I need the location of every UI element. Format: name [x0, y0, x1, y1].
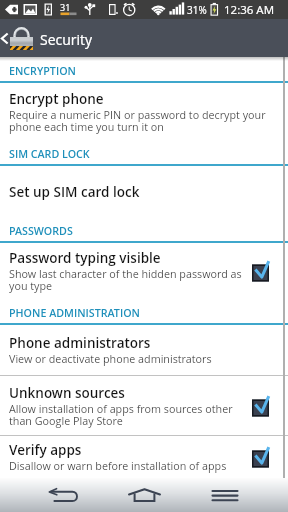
staticText: Phone administrators [9, 334, 151, 352]
staticText: SIM CARD LOCK [9, 147, 90, 162]
staticText: Require a numeric PIN or password to dec… [9, 108, 282, 134]
staticText: Password typing visible [9, 249, 161, 267]
staticText: Encrypt phone [9, 90, 104, 108]
staticText: Allow installation of apps from sources … [9, 402, 246, 428]
staticText: Disallow or warn before installation of … [9, 459, 227, 474]
staticText: 31 [60, 1, 71, 13]
button[interactable]: Navigate up [0, 19, 34, 57]
staticText: 31% [187, 3, 207, 17]
staticText: 12:36 AM [224, 2, 275, 18]
staticText: PASSWORDS [9, 224, 73, 239]
button[interactable]: Password typing visible [0, 243, 288, 299]
staticText: Show last character of the hidden passwo… [9, 267, 246, 293]
staticText: Verify apps [9, 441, 82, 459]
staticText: Unknown sources [9, 384, 125, 402]
button[interactable]: Phone administrators [0, 325, 288, 375]
button[interactable]: Unknown sources [0, 376, 288, 435]
button[interactable]: Encrypt phone [0, 83, 288, 140]
button[interactable]: Recent apps [187, 478, 263, 512]
button[interactable]: Home [106, 478, 182, 512]
button[interactable]: Set up SIM card lock [0, 166, 288, 217]
staticText: Security [40, 30, 93, 49]
staticText: Set up SIM card lock [9, 183, 140, 201]
staticText: ENCRYPTION [9, 64, 76, 79]
staticText: PHONE ADMINISTRATION [9, 306, 140, 321]
button[interactable]: Back [25, 478, 101, 512]
button[interactable]: Verify apps [0, 436, 288, 478]
staticText: View or deactivate phone administrators [9, 352, 212, 367]
